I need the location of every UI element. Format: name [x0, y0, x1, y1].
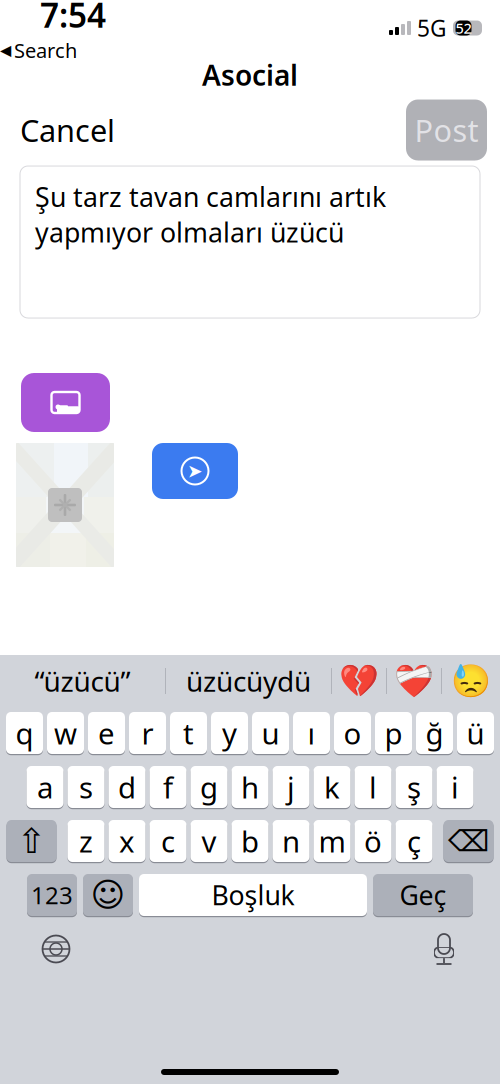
staticText: v — [201, 821, 216, 860]
staticText: a — [37, 767, 53, 806]
button[interactable]: l — [354, 765, 391, 809]
button[interactable]: Boşluk — [139, 873, 367, 917]
button[interactable]: ı — [293, 711, 330, 755]
button[interactable]: j — [272, 765, 309, 809]
staticText: 123 — [31, 879, 73, 911]
staticText: ı — [307, 713, 315, 752]
staticText: z — [79, 821, 93, 860]
button[interactable]: x — [108, 819, 145, 863]
button[interactable]: ğ — [416, 711, 453, 755]
button[interactable]: Dictation — [414, 927, 474, 971]
staticText: t — [183, 713, 194, 752]
button[interactable]: Add location — [152, 443, 238, 499]
button[interactable]: 😓 — [442, 659, 500, 703]
button[interactable]: Emoji — [83, 873, 133, 917]
button[interactable]: ü — [457, 711, 494, 755]
button[interactable]: v — [190, 819, 227, 863]
staticText: Search — [14, 37, 77, 63]
staticText: ❤️‍🩹 — [394, 663, 434, 699]
button[interactable]: Cancel — [0, 100, 115, 160]
button[interactable]: “üzücü” — [0, 659, 165, 703]
button[interactable]: b — [231, 819, 268, 863]
button[interactable]: t — [170, 711, 207, 755]
button[interactable]: Delete — [443, 819, 493, 863]
button[interactable]: üzücüydü — [166, 659, 331, 703]
button[interactable]: ş — [395, 765, 432, 809]
staticText: h — [241, 767, 259, 806]
staticText: üzücüydü — [186, 662, 311, 700]
staticText: p — [384, 713, 402, 752]
staticText: w — [54, 713, 77, 752]
button[interactable]: w — [47, 711, 84, 755]
button[interactable]: ç — [395, 819, 432, 863]
button[interactable]: p — [375, 711, 412, 755]
button[interactable]: q — [6, 711, 43, 755]
button[interactable]: u — [252, 711, 289, 755]
button[interactable]: Post — [406, 99, 487, 160]
staticText: l — [369, 767, 377, 806]
button[interactable]: o — [334, 711, 371, 755]
button[interactable]: d — [108, 765, 145, 809]
button[interactable]: ö — [354, 819, 391, 863]
button[interactable]: r — [129, 711, 166, 755]
button[interactable]: n — [272, 819, 309, 863]
staticText: ⌫ — [448, 824, 489, 858]
button[interactable]: a — [26, 765, 63, 809]
staticText: o — [343, 713, 361, 752]
button[interactable]: 💔 — [332, 659, 386, 703]
button[interactable]: 123 — [27, 873, 77, 917]
button[interactable]: k — [313, 765, 350, 809]
button[interactable]: z — [67, 819, 104, 863]
staticText: ö — [364, 821, 382, 860]
button[interactable]: c — [149, 819, 186, 863]
staticText: n — [282, 821, 300, 860]
button[interactable]: Geç — [373, 873, 473, 917]
staticText: ş — [407, 767, 421, 806]
staticText: Post — [414, 110, 478, 150]
staticText: ◀ — [0, 42, 11, 58]
staticText: x — [119, 821, 135, 860]
button[interactable]: m — [313, 819, 350, 863]
staticText: r — [141, 713, 153, 752]
staticText: 💔 — [339, 663, 379, 699]
button[interactable]: h — [231, 765, 268, 809]
button[interactable]: Add photo — [21, 373, 110, 432]
staticText: 5G — [417, 13, 447, 43]
staticText: ü — [466, 713, 484, 752]
staticText: ➤ — [187, 460, 203, 482]
staticText: Boşluk — [211, 877, 294, 913]
staticText: Şu tarz tavan camlarını artık yapmıyor o… — [35, 179, 386, 250]
button[interactable]: i — [436, 765, 473, 809]
staticText: b — [241, 821, 259, 860]
button[interactable]: g — [190, 765, 227, 809]
button[interactable]: f — [149, 765, 186, 809]
button[interactable]: ❤️‍🩹 — [387, 659, 441, 703]
staticText: m — [318, 821, 345, 860]
staticText: ç — [407, 821, 421, 860]
staticText: u — [261, 713, 279, 752]
staticText: Cancel — [20, 110, 115, 150]
button[interactable]: Şu tarz tavan camlarını artık yapmıyor o… — [20, 166, 480, 318]
staticText: y — [222, 713, 237, 752]
staticText: e — [98, 713, 115, 752]
staticText: 😓 — [451, 663, 491, 699]
button[interactable]: Next keyboard — [26, 927, 86, 971]
staticText: “üzücü” — [34, 662, 130, 700]
staticText: Geç — [399, 877, 446, 913]
staticText: c — [161, 821, 175, 860]
staticText: ğ — [425, 713, 443, 752]
staticText: 7:54 — [40, 0, 106, 37]
staticText: ☺ — [90, 876, 125, 914]
button[interactable]: Shift — [6, 819, 56, 863]
staticText: i — [451, 767, 459, 806]
staticText: ⇧ — [17, 821, 46, 861]
staticText: d — [118, 767, 136, 806]
button[interactable]: e — [88, 711, 125, 755]
staticText: k — [324, 767, 340, 806]
staticText: f — [163, 767, 173, 806]
staticText: 52 — [455, 18, 471, 38]
button[interactable]: s — [67, 765, 104, 809]
staticText: j — [287, 767, 295, 806]
staticText: q — [15, 713, 33, 752]
button[interactable]: y — [211, 711, 248, 755]
